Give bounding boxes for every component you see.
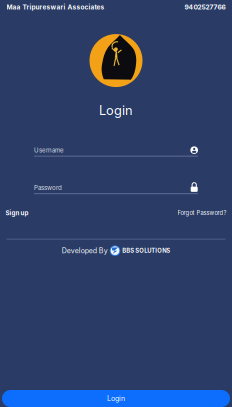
staticText: Sign up (5, 209, 28, 217)
staticText: Username (34, 146, 64, 154)
staticText: Password (34, 184, 62, 191)
button[interactable]: Forgot Password? (177, 209, 226, 216)
staticText: Developed By (62, 246, 108, 255)
button[interactable]: Sign up (5, 209, 28, 217)
staticText: Forgot Password? (177, 209, 226, 216)
staticText: Login (107, 394, 125, 403)
staticText: Login (99, 103, 133, 118)
button[interactable]: Login (2, 390, 230, 407)
staticText: 9402527766 (184, 3, 225, 11)
staticText: Maa Tripureswari Associates (6, 3, 104, 11)
staticText: BBS SOLUTIONS (122, 247, 170, 254)
